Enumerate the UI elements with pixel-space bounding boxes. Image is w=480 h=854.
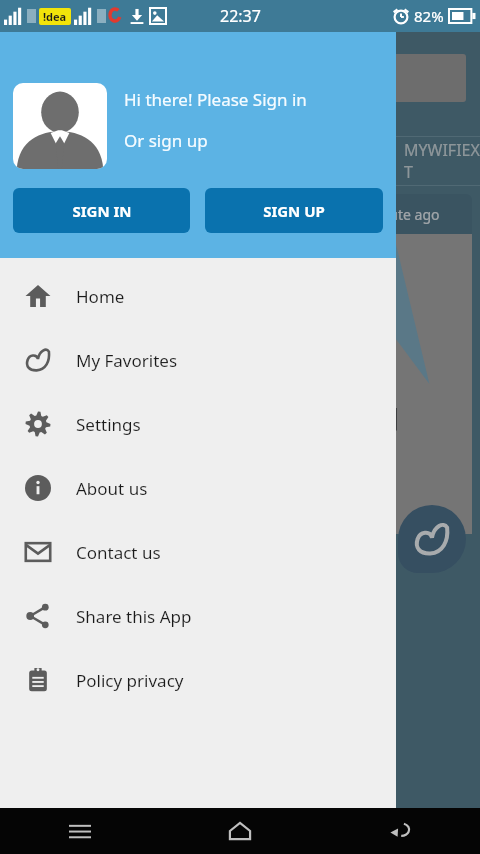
staticText: Or sign up bbox=[124, 129, 208, 152]
staticText: 82% bbox=[414, 6, 444, 26]
staticText: minute ago bbox=[364, 205, 440, 224]
button[interactable]: Recent apps bbox=[0, 808, 160, 854]
staticText: Hi there! Please Sign in bbox=[124, 88, 307, 111]
staticText: Policy privacy bbox=[76, 669, 184, 692]
button[interactable]: Settings bbox=[0, 392, 396, 456]
staticText: MYWIFIEXT bbox=[404, 139, 480, 183]
button[interactable]: Home bbox=[160, 808, 320, 854]
staticText: Share this App bbox=[76, 605, 192, 628]
button[interactable]: SIGN IN bbox=[13, 188, 190, 233]
button[interactable]: My Favorites bbox=[0, 328, 396, 392]
staticText: Home bbox=[76, 285, 125, 308]
button[interactable]: Share this App bbox=[0, 584, 396, 648]
staticText: !dea bbox=[43, 9, 67, 24]
button[interactable]: Profile picture bbox=[13, 83, 107, 169]
staticText: My Favorites bbox=[76, 349, 178, 372]
staticText: SIGN UP bbox=[263, 201, 325, 221]
staticText: SIGN IN bbox=[72, 201, 132, 221]
button[interactable]: Favorite bbox=[398, 505, 466, 573]
staticText: About us bbox=[76, 477, 148, 500]
button[interactable]: Policy privacy bbox=[0, 648, 396, 712]
button[interactable]: Home bbox=[0, 264, 396, 328]
staticText: Settings bbox=[76, 413, 141, 436]
button[interactable]: SIGN UP bbox=[205, 188, 383, 233]
button[interactable]: Contact us bbox=[0, 520, 396, 584]
button[interactable]: Back bbox=[320, 808, 480, 854]
button[interactable]: er.. bbox=[300, 54, 466, 102]
button[interactable]: About us bbox=[0, 456, 396, 520]
staticText: Contact us bbox=[76, 541, 161, 564]
staticText: 22:37 bbox=[220, 5, 261, 27]
